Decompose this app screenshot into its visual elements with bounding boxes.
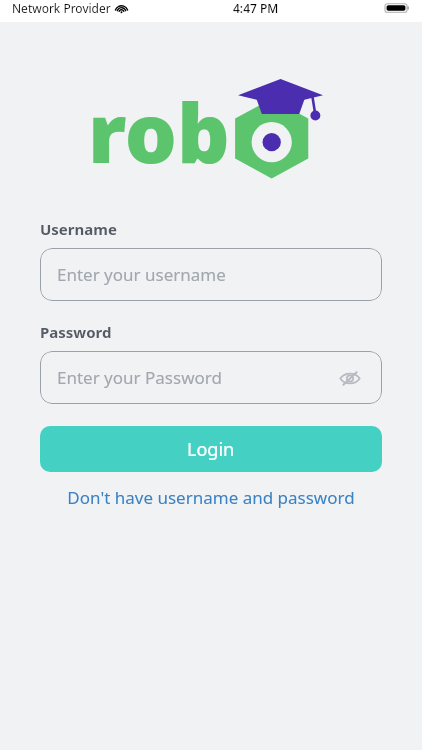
staticText: Username	[40, 219, 117, 239]
staticText: rob	[88, 75, 230, 180]
staticText: Enter your username	[57, 263, 226, 286]
button[interactable]: Enter your username	[40, 248, 382, 301]
staticText: Network Provider	[12, 0, 111, 16]
staticText: Don't have username and password	[67, 486, 355, 509]
staticText: Password	[40, 322, 112, 342]
button[interactable]: Don't have username and password	[40, 482, 382, 513]
button[interactable]: Show password	[335, 363, 365, 393]
button[interactable]: Login	[40, 426, 382, 472]
staticText: Login	[187, 437, 235, 462]
staticText: Enter your Password	[57, 366, 222, 389]
staticText: 4:47 PM	[233, 0, 279, 16]
button[interactable]: Enter your Password	[40, 351, 382, 404]
